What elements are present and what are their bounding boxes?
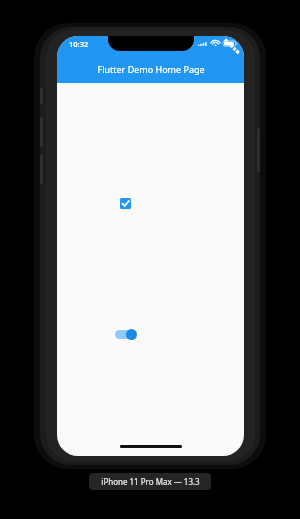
button[interactable]: Toggle switch	[107, 322, 143, 346]
staticText: 10:32	[69, 39, 89, 49]
button[interactable]	[113, 191, 137, 215]
staticText: iPhone 11 Pro Max — 13.3	[101, 476, 200, 487]
staticText: Flutter Demo Home Page	[97, 63, 205, 75]
